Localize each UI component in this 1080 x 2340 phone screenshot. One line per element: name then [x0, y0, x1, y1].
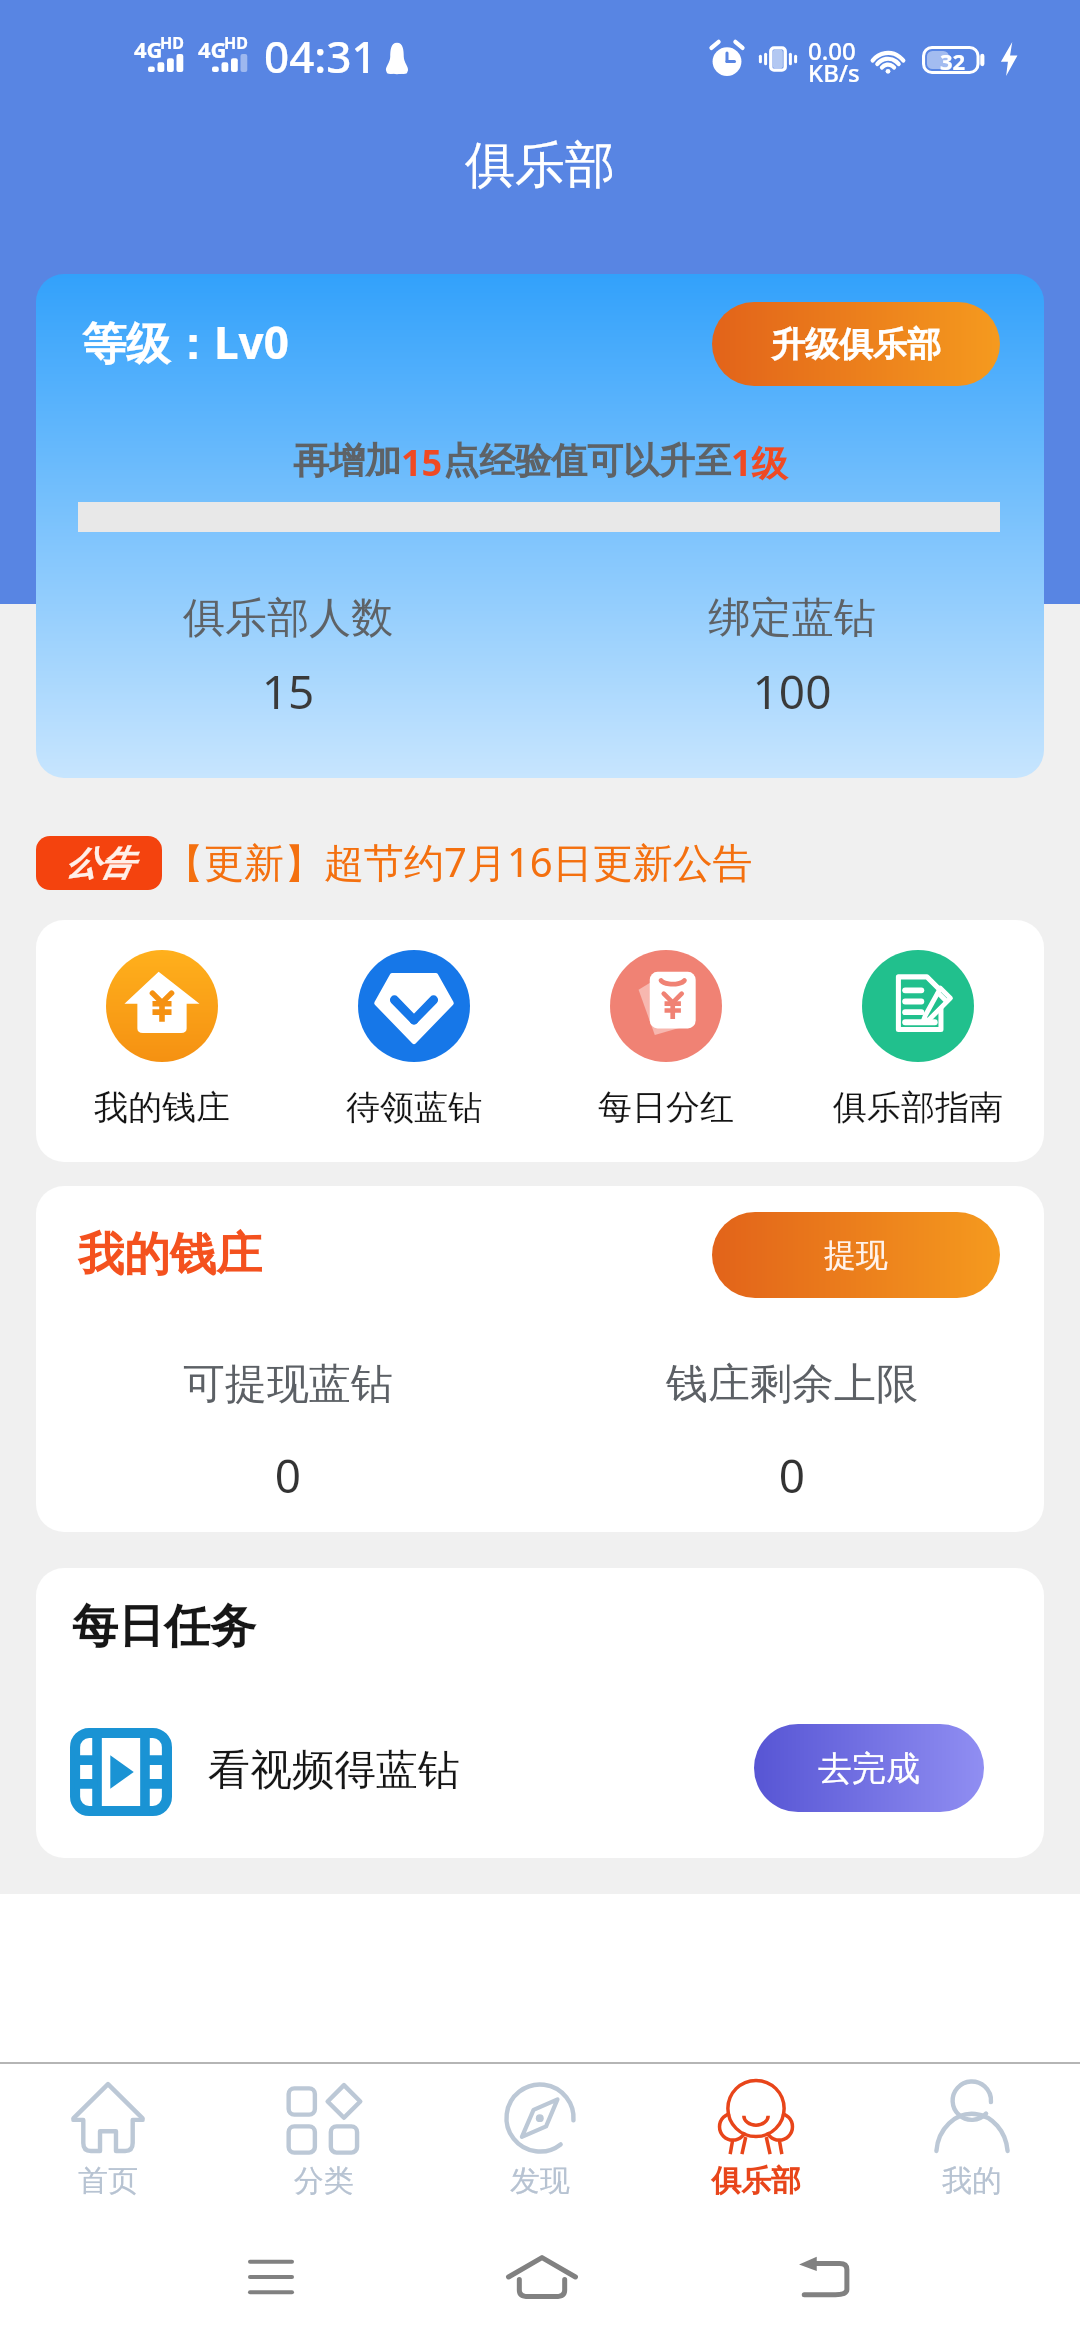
staticText: 俱乐部指南: [833, 1086, 1003, 1129]
staticText: 绑定蓝钻: [540, 592, 1044, 645]
button[interactable]: 提现: [712, 1212, 1000, 1298]
staticText: 钱庄剩余上限: [540, 1358, 1044, 1411]
button[interactable]: 公告: [36, 836, 1044, 890]
staticText: 发现: [510, 2162, 570, 2200]
staticText: 去完成: [818, 1747, 920, 1790]
button[interactable]: Home: [490, 2232, 594, 2322]
staticText: 每日任务: [72, 1598, 256, 1656]
button[interactable]: 待领蓝钻: [288, 920, 540, 1162]
staticText: 公告: [65, 842, 133, 885]
button[interactable]: 看视频得蓝钻: [36, 1712, 1044, 1828]
staticText: 【更新】超节约7月16日更新公告: [164, 834, 753, 888]
button[interactable]: Recent apps: [220, 2232, 322, 2322]
staticText: 我的钱庄: [94, 1086, 230, 1129]
button[interactable]: 每日分红: [540, 920, 792, 1162]
staticText: 4G: [198, 34, 227, 64]
staticText: HD: [224, 32, 248, 54]
staticText: 15: [401, 438, 443, 487]
button[interactable]: 去完成: [754, 1724, 984, 1812]
staticText: 0: [540, 1444, 1044, 1507]
button[interactable]: 首页: [0, 2064, 216, 2210]
staticText: 待领蓝钻: [346, 1086, 482, 1129]
button[interactable]: 我的: [864, 2064, 1080, 2210]
staticText: 提现: [824, 1235, 888, 1275]
button[interactable]: 分类: [216, 2064, 432, 2210]
staticText: 15: [36, 660, 540, 723]
button[interactable]: Back: [772, 2232, 876, 2322]
staticText: 分类: [294, 2162, 354, 2200]
staticText: 04:31: [264, 26, 377, 86]
staticText: KB/s: [808, 56, 860, 89]
staticText: 100: [540, 660, 1044, 723]
button[interactable]: 我的钱庄: [36, 920, 288, 1162]
staticText: 升级俱乐部: [771, 323, 941, 366]
staticText: 点经验值可以升至: [443, 438, 731, 483]
staticText: 首页: [78, 2162, 138, 2200]
staticText: 32: [940, 46, 966, 76]
staticText: 再增加: [293, 438, 401, 483]
staticText: 我的: [942, 2162, 1002, 2200]
button[interactable]: 升级俱乐部: [712, 302, 1000, 386]
staticText: 俱乐部: [711, 2162, 801, 2200]
staticText: HD: [160, 32, 184, 54]
staticText: 看视频得蓝钻: [208, 1744, 460, 1797]
staticText: 我的钱庄: [78, 1226, 262, 1284]
staticText: 等级：Lv0: [82, 312, 289, 372]
staticText: 俱乐部人数: [36, 592, 540, 645]
staticText: 4G: [134, 34, 163, 64]
staticText: 1级: [731, 438, 788, 487]
staticText: 0.00: [808, 34, 856, 67]
button[interactable]: 俱乐部指南: [792, 920, 1044, 1162]
staticText: 0: [36, 1444, 540, 1507]
staticText: 可提现蓝钻: [36, 1358, 540, 1411]
button[interactable]: 发现: [432, 2064, 648, 2210]
staticText: 俱乐部: [0, 134, 1080, 197]
button[interactable]: 俱乐部: [648, 2064, 864, 2210]
staticText: 每日分红: [598, 1086, 734, 1129]
